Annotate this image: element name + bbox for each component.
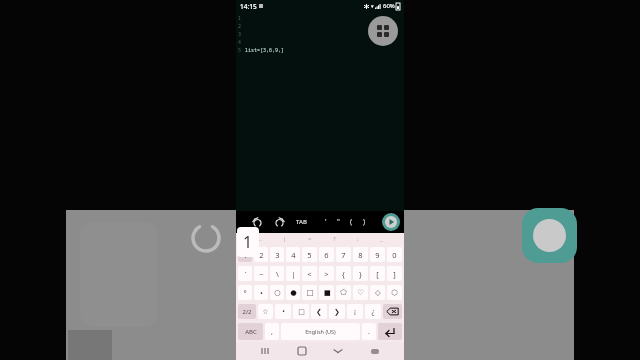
- button[interactable]: □: [293, 304, 309, 319]
- button[interactable]: Enter: [378, 323, 402, 340]
- button[interactable]: \: [270, 266, 284, 281]
- staticText: 1: [243, 250, 248, 260]
- button[interactable]: 8: [353, 247, 368, 262]
- button[interactable]: ☆: [258, 304, 273, 319]
- button[interactable]: English (US): [281, 323, 360, 340]
- staticText: 0: [392, 250, 397, 260]
- staticText: [: [376, 269, 379, 279]
- button[interactable]: 0: [387, 247, 402, 262]
- button[interactable]: |: [286, 266, 300, 281]
- staticText: ◇: [375, 288, 381, 297]
- staticText: ,: [271, 327, 273, 337]
- button[interactable]: ■: [319, 285, 334, 300]
- button[interactable]: `: [238, 266, 252, 281]
- button[interactable]: [: [370, 266, 385, 281]
- staticText: (: [350, 217, 353, 227]
- button[interactable]: <: [302, 266, 317, 281]
- button[interactable]: •: [254, 285, 268, 300]
- button[interactable]: Backspace: [383, 304, 402, 319]
- staticText: .: [368, 327, 370, 337]
- button[interactable]: 9: [370, 247, 385, 262]
- staticText: ■: [323, 288, 331, 297]
- button[interactable]: 3: [270, 247, 284, 262]
- staticText: _: [380, 235, 383, 243]
- button[interactable]: }: [353, 266, 368, 281]
- button[interactable]: .: [362, 323, 376, 340]
- button[interactable]: 6: [319, 247, 334, 262]
- button[interactable]: ~: [254, 266, 268, 281]
- staticText: 5: [238, 47, 242, 54]
- button[interactable]: 2/2: [238, 304, 256, 319]
- button[interactable]: 5: [302, 247, 317, 262]
- button[interactable]: Home: [294, 343, 310, 359]
- button[interactable]: ◇: [370, 285, 385, 300]
- staticText: 9: [375, 250, 380, 260]
- staticText: 1: [243, 231, 253, 253]
- button[interactable]: Undo: [250, 215, 264, 229]
- button[interactable]: ABC: [238, 323, 263, 340]
- staticText: 1: [238, 15, 242, 22]
- button[interactable]: Hide keyboard: [367, 343, 383, 359]
- staticText: ~: [259, 269, 264, 279]
- staticText: 3: [238, 31, 242, 38]
- button[interactable]: ,: [265, 323, 279, 340]
- button[interactable]: 4: [286, 247, 300, 262]
- staticText: `: [244, 269, 247, 279]
- button[interactable]: □: [302, 285, 317, 300]
- staticText: |: [283, 235, 287, 243]
- button[interactable]: °: [238, 285, 252, 300]
- button[interactable]: ': [319, 211, 332, 233]
- staticText: 14:15: [240, 2, 257, 11]
- button[interactable]: ♡: [353, 285, 368, 300]
- staticText: 2: [259, 250, 264, 260]
- button[interactable]: 2: [254, 247, 268, 262]
- button[interactable]: ¿: [365, 304, 381, 319]
- button[interactable]: ⬡: [387, 285, 402, 300]
- staticText: :: [357, 235, 359, 243]
- button[interactable]: ): [358, 211, 371, 233]
- button[interactable]: Redo: [272, 215, 286, 229]
- staticText: English (US): [305, 328, 336, 335]
- staticText: ♡: [357, 288, 364, 297]
- staticText: ●: [290, 288, 297, 297]
- button[interactable]: ●: [286, 285, 300, 300]
- staticText: ▾: [371, 3, 374, 9]
- staticText: TAB: [296, 218, 307, 226]
- staticText: ABC: [245, 328, 257, 336]
- button[interactable]: ]: [387, 266, 402, 281]
- staticText: □: [306, 288, 314, 297]
- button[interactable]: ❯: [329, 304, 345, 319]
- button[interactable]: 7: [336, 247, 351, 262]
- button[interactable]: ": [332, 211, 345, 233]
- staticText: ¡: [354, 307, 356, 317]
- button[interactable]: Run: [382, 213, 400, 231]
- staticText: ⬡: [391, 288, 398, 297]
- staticText: ": [337, 217, 340, 227]
- staticText: 4: [238, 39, 242, 46]
- button[interactable]: TAB: [294, 218, 309, 226]
- staticText: list=[3,6,9,]: [245, 47, 285, 54]
- staticText: •: [282, 307, 285, 317]
- staticText: ): [363, 217, 366, 227]
- button[interactable]: ⬠: [336, 285, 351, 300]
- button[interactable]: Menu: [368, 16, 398, 46]
- button[interactable]: Back: [330, 343, 346, 359]
- staticText: •: [260, 288, 263, 298]
- button[interactable]: ○: [270, 285, 284, 300]
- staticText: 6: [324, 250, 329, 260]
- button[interactable]: {: [336, 266, 351, 281]
- button[interactable]: Recents: [257, 343, 273, 359]
- staticText: 4: [291, 250, 296, 260]
- staticText: \: [276, 269, 279, 279]
- staticText: }: [359, 269, 362, 279]
- button[interactable]: ¡: [347, 304, 363, 319]
- button[interactable]: •: [275, 304, 291, 319]
- staticText: 8: [358, 250, 363, 260]
- button[interactable]: (: [345, 211, 358, 233]
- staticText: ☆: [262, 308, 269, 316]
- button[interactable]: 1: [238, 247, 252, 262]
- button[interactable]: ❮: [311, 304, 327, 319]
- staticText: 60%: [383, 2, 395, 10]
- staticText: 2/2: [242, 308, 252, 316]
- button[interactable]: >: [319, 266, 334, 281]
